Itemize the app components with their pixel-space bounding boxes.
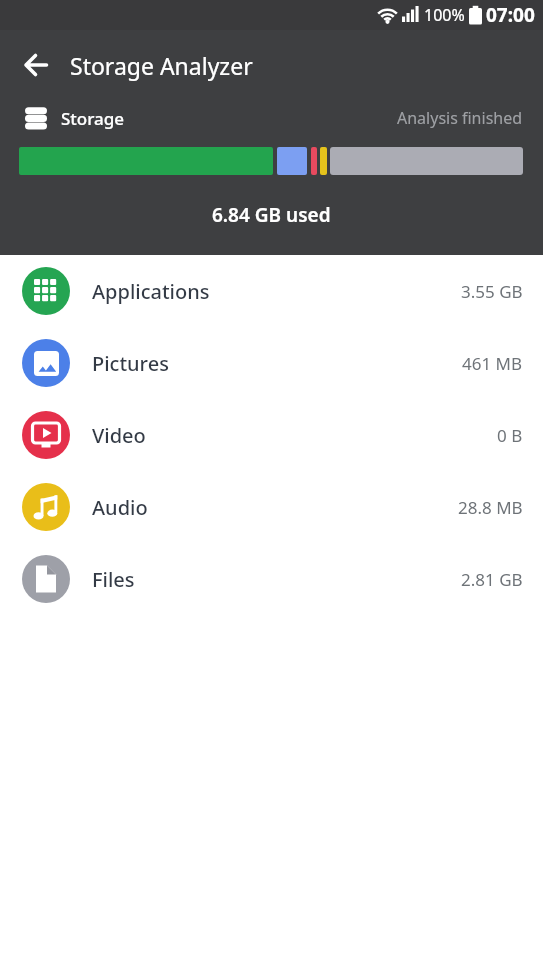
- button[interactable]: Files: [0, 543, 543, 615]
- button[interactable]: Applications: [0, 255, 543, 327]
- button[interactable]: Audio: [0, 471, 543, 543]
- button[interactable]: Pictures: [0, 327, 543, 399]
- staticText: Files: [92, 566, 135, 593]
- staticText: Storage Analyzer: [70, 50, 253, 81]
- staticText: 461 MB: [462, 352, 523, 375]
- staticText: 07:00: [486, 2, 535, 28]
- staticText: 28.8 MB: [458, 496, 523, 519]
- staticText: Pictures: [92, 350, 169, 377]
- staticText: 6.84 GB used: [212, 202, 331, 228]
- staticText: 2.81 GB: [461, 568, 523, 591]
- staticText: Storage: [61, 107, 125, 130]
- button[interactable]: [24, 53, 48, 77]
- staticText: 0 B: [497, 424, 523, 447]
- staticText: Applications: [92, 278, 210, 305]
- staticText: Analysis finished: [397, 107, 523, 129]
- staticText: 3.55 GB: [461, 280, 523, 303]
- staticText: Audio: [92, 494, 148, 521]
- staticText: Video: [92, 422, 146, 449]
- button[interactable]: Video: [0, 399, 543, 471]
- staticText: 100%: [424, 4, 465, 26]
